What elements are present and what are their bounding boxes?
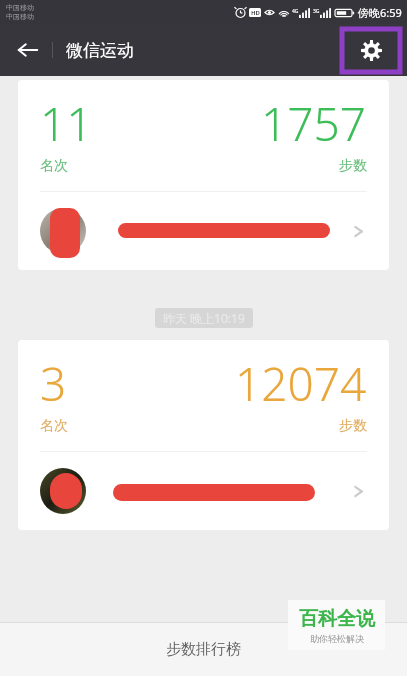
button[interactable]: 3	[18, 340, 389, 530]
staticText: 傍晚6:59	[358, 5, 402, 20]
staticText: 11	[40, 92, 93, 155]
staticText: 昨天 晚上10:19	[163, 310, 245, 326]
staticText: 3G	[313, 8, 320, 15]
button[interactable]: Back	[8, 30, 48, 70]
staticText: 名次	[40, 157, 68, 175]
staticText: 助你轻松解决	[310, 633, 364, 644]
staticText: 1757	[261, 92, 367, 155]
staticText: HD	[251, 9, 260, 17]
staticText: 名次	[40, 417, 68, 435]
staticText: 12074	[235, 352, 367, 415]
button[interactable]: Settings	[342, 29, 400, 72]
staticText: 步数排行榜	[166, 640, 241, 659]
button[interactable]	[18, 452, 389, 530]
button[interactable]: 11	[18, 80, 389, 270]
staticText: 中国移动	[6, 12, 34, 21]
staticText: 步数	[339, 157, 367, 175]
staticText: 百科全说	[299, 607, 375, 631]
staticText: 微信运动	[66, 40, 134, 61]
staticText: 中国移动	[6, 3, 34, 12]
staticText: 步数	[339, 417, 367, 435]
button[interactable]	[18, 192, 389, 270]
button[interactable]: 步数排行榜	[0, 623, 407, 676]
staticText: 4G	[292, 8, 299, 15]
staticText: 3	[40, 352, 67, 415]
